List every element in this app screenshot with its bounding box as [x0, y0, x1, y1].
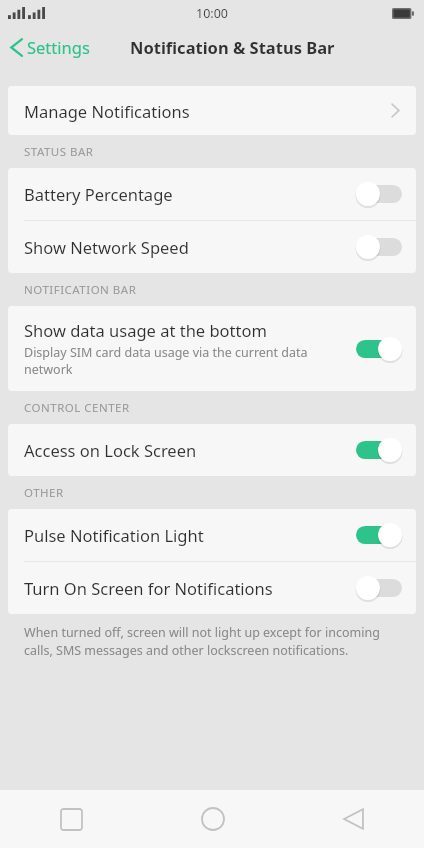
button[interactable]: Back [283, 790, 424, 848]
button[interactable]: Manage Notifications [8, 86, 416, 135]
staticText: Access on Lock Screen [24, 439, 197, 461]
button[interactable]: Battery Percentage [8, 168, 416, 220]
button[interactable]: Turn On Screen for Notifications [8, 562, 416, 614]
staticText: Show data usage at the bottom [24, 319, 267, 341]
staticText: Turn On Screen for Notifications [24, 577, 273, 599]
staticText: When turned off, screen will not light u… [24, 624, 400, 659]
button[interactable]: Home [142, 790, 283, 848]
staticText: CONTROL CENTER [24, 400, 130, 416]
button[interactable]: On [356, 522, 402, 548]
staticText: Display SIM card data usage via the curr… [24, 344, 344, 378]
staticText: NOTIFICATION BAR [24, 282, 137, 298]
staticText: STATUS BAR [24, 144, 94, 160]
button[interactable]: Off [356, 575, 402, 601]
button[interactable]: On [356, 437, 402, 463]
button[interactable]: Recent apps [0, 790, 142, 848]
button[interactable]: Show Network Speed [8, 221, 416, 273]
button[interactable]: Access on Lock Screen [8, 424, 416, 476]
button[interactable]: On [356, 336, 402, 362]
button[interactable]: Pulse Notification Light [8, 509, 416, 561]
staticText: Notification & Status Bar [130, 36, 335, 58]
staticText: OTHER [24, 485, 64, 501]
staticText: Show Network Speed [24, 236, 189, 258]
button[interactable]: Off [356, 181, 402, 207]
button[interactable]: Settings [0, 32, 98, 62]
staticText: Manage Notifications [24, 100, 391, 122]
button[interactable]: Off [356, 234, 402, 260]
staticText: Pulse Notification Light [24, 524, 204, 546]
staticText: 10:00 [196, 5, 228, 22]
button[interactable]: Show data usage at the bottom [8, 306, 416, 391]
staticText: Battery Percentage [24, 183, 173, 205]
staticText: Settings [27, 36, 90, 58]
